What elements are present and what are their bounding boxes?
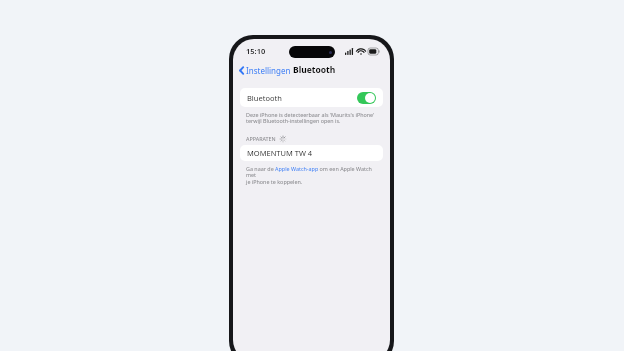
staticText: MOMENTUM TW 4 [247,148,313,158]
button[interactable]: Bluetooth aan/uit [357,92,376,104]
staticText: Bluetooth [247,93,282,103]
staticText: APPARATEN [246,135,276,142]
button[interactable]: MOMENTUM TW 4 [240,145,383,161]
staticText: Deze iPhone is detecteerbaar als 'Maurit… [246,111,375,125]
staticText: Instellingen [246,65,291,76]
staticText: Bluetooth [293,64,336,76]
button[interactable]: Ga naar de Apple Watch-app om een Apple … [246,165,377,186]
staticText: 15:10 [246,46,266,56]
button[interactable]: Bluetooth [240,88,383,107]
button[interactable]: Instellingen [233,63,295,78]
